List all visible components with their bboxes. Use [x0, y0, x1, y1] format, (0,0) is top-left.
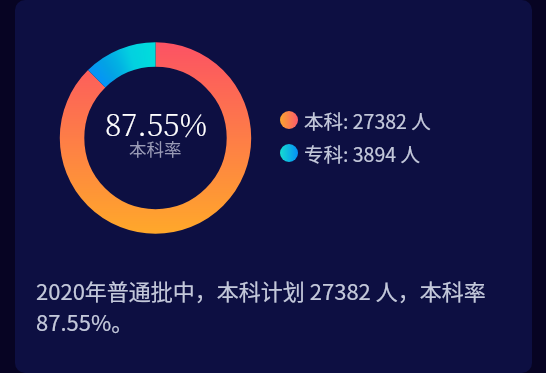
staticText: 本科率 [129, 136, 182, 161]
staticText: 专科: 3894 人 [304, 139, 420, 167]
staticText: 87.55% [105, 101, 207, 144]
staticText: 本科: 27382 人 [304, 106, 431, 134]
staticText: 2020年普通批中，本科计划 27382 人，本科率87.55%。 [36, 274, 496, 337]
